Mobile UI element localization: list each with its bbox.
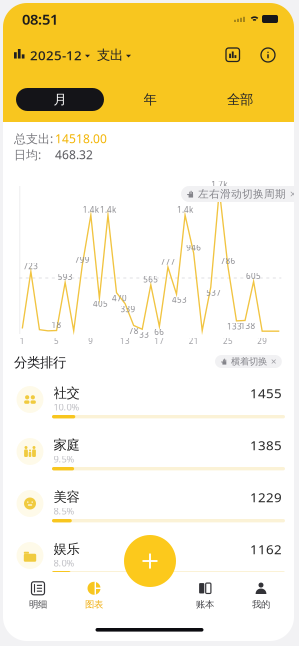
- staticText: 786: [220, 255, 235, 266]
- staticText: 家庭: [53, 437, 79, 453]
- staticText: 17: [154, 336, 164, 346]
- staticText: 13: [120, 336, 130, 346]
- button[interactable]: Add record: [124, 535, 176, 587]
- staticText: 78: [129, 326, 139, 336]
- staticText: 8.0%: [53, 557, 74, 569]
- staticText: 8.5%: [53, 505, 74, 517]
- staticText: 18: [52, 320, 62, 330]
- staticText: 9.5%: [53, 453, 74, 465]
- staticText: 1385: [250, 436, 282, 454]
- staticText: 946: [186, 242, 201, 253]
- staticText: 25: [223, 336, 233, 346]
- staticText: 537: [206, 287, 221, 298]
- staticText: 29: [257, 336, 267, 346]
- staticText: 1: [20, 336, 25, 346]
- staticText: 1.4k: [83, 204, 99, 215]
- button[interactable]: 年: [105, 88, 195, 111]
- staticText: 799: [75, 254, 90, 265]
- staticText: 453: [172, 294, 187, 305]
- staticText: 支出: [97, 47, 123, 63]
- button[interactable]: Chart type: [226, 48, 239, 61]
- button[interactable]: 明细: [12, 579, 64, 613]
- staticText: 777: [160, 256, 175, 267]
- staticText: 10.0%: [53, 401, 79, 413]
- staticText: 全部: [227, 91, 253, 108]
- button[interactable]: 家庭: [0, 436, 299, 488]
- button[interactable]: 美容: [0, 488, 299, 540]
- staticText: 图表: [85, 599, 103, 610]
- staticText: 08:51: [22, 9, 58, 29]
- staticText: 1.4k: [100, 204, 116, 215]
- button[interactable]: 左右滑动切换周期: [181, 186, 299, 202]
- button[interactable]: 娱乐: [0, 540, 299, 592]
- staticText: 14518.00: [55, 130, 107, 146]
- staticText: 1455: [250, 384, 282, 402]
- staticText: 我的: [252, 599, 270, 610]
- button[interactable]: 月: [15, 88, 105, 111]
- staticText: 1229: [250, 488, 282, 506]
- staticText: 33: [139, 329, 149, 340]
- button[interactable]: 支出: [97, 44, 131, 66]
- button[interactable]: 2025-12: [30, 44, 90, 66]
- staticText: 66: [154, 327, 164, 337]
- staticText: 美容: [53, 489, 79, 505]
- staticText: 468.32: [55, 146, 93, 162]
- staticText: 723: [23, 261, 38, 271]
- staticText: 2025-12: [30, 46, 82, 64]
- staticText: 分类排行: [14, 354, 66, 371]
- staticText: 账本: [196, 599, 214, 610]
- staticText: 470: [112, 293, 127, 303]
- staticText: 565: [143, 274, 158, 285]
- button[interactable]: 账本: [179, 579, 231, 613]
- staticText: 605: [246, 271, 261, 281]
- staticText: 年: [143, 91, 156, 108]
- staticText: 社交: [53, 385, 79, 401]
- staticText: 月: [53, 91, 66, 108]
- staticText: 9: [88, 336, 93, 346]
- staticText: 133: [227, 321, 242, 332]
- staticText: 21: [189, 336, 199, 346]
- staticText: 405: [93, 298, 108, 309]
- staticText: 593: [58, 272, 73, 282]
- staticText: 1162: [250, 540, 282, 558]
- staticText: 138: [240, 321, 255, 331]
- button[interactable]: Info: [261, 48, 275, 62]
- staticText: 明细: [29, 599, 47, 610]
- button[interactable]: 图表: [68, 579, 120, 613]
- staticText: 横着切换: [231, 356, 267, 367]
- staticText: 娱乐: [53, 541, 79, 557]
- button[interactable]: 我的: [235, 579, 287, 613]
- button[interactable]: 横着切换: [215, 355, 282, 368]
- staticText: 5: [54, 336, 59, 346]
- staticText: 339: [121, 304, 136, 314]
- staticText: 日均:: [14, 146, 41, 162]
- staticText: 总支出:: [14, 130, 53, 146]
- staticText: 左右滑动切换周期: [198, 187, 286, 200]
- button[interactable]: 社交: [0, 384, 299, 436]
- button[interactable]: 全部: [195, 88, 285, 111]
- staticText: 1.7k: [211, 179, 227, 190]
- staticText: 1.4k: [177, 204, 193, 215]
